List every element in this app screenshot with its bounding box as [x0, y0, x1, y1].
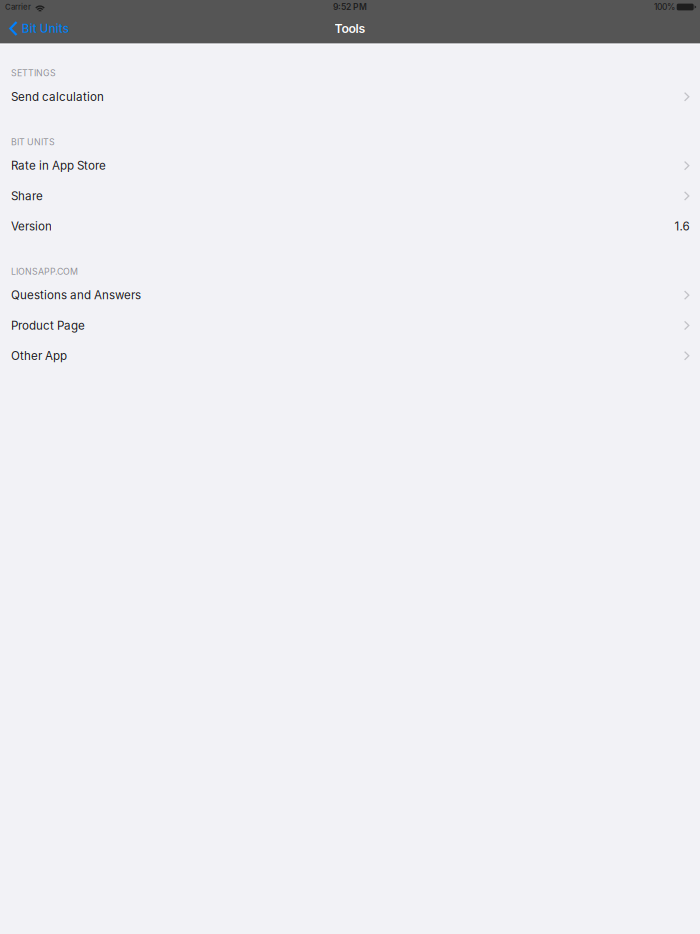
button[interactable]: Send calculation [0, 82, 700, 112]
staticText: Carrier [5, 2, 31, 12]
staticText: BIT UNITS [11, 137, 55, 147]
staticText: Rate in App Store [11, 159, 106, 173]
staticText: 9:52 PM [333, 2, 367, 12]
button[interactable]: Other App [0, 341, 700, 371]
staticText: 1.6 [675, 219, 690, 233]
staticText: Other App [11, 349, 67, 363]
staticText: Send calculation [11, 90, 104, 104]
staticText: Tools [334, 21, 365, 36]
staticText: 100% [654, 2, 675, 12]
button[interactable]: Bit Units [0, 14, 79, 43]
button[interactable]: Rate in App Store [0, 150, 700, 181]
button[interactable]: Share [0, 181, 700, 211]
staticText: Bit Units [22, 21, 69, 35]
staticText: SETTINGS [11, 68, 56, 78]
staticText: Product Page [11, 318, 85, 332]
button[interactable]: Product Page [0, 310, 700, 341]
staticText: Share [11, 189, 43, 203]
staticText: LIONSAPP.COM [11, 266, 78, 277]
button[interactable]: Questions and Answers [0, 280, 700, 310]
staticText: Version [11, 219, 52, 233]
staticText: Questions and Answers [11, 288, 141, 302]
